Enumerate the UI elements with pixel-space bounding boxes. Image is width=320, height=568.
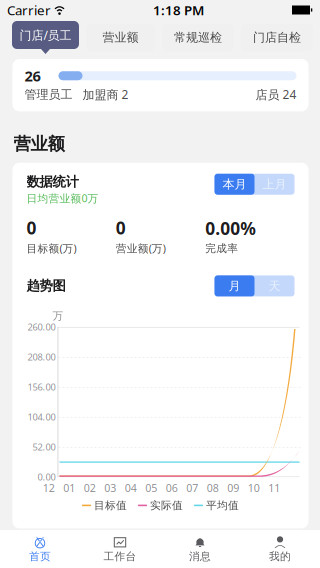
button[interactable]: 我的 [240,535,320,563]
button[interactable]: 营业额 [86,23,155,51]
staticText: 营业额 [102,30,138,45]
staticText: 常规巡检 [174,30,222,45]
button[interactable]: 门店自检 [241,23,313,51]
button[interactable]: 工作台 [80,535,160,563]
staticText: 208.00 [27,351,55,363]
staticText: 消息 [189,550,211,563]
staticText: 52.00 [32,441,55,453]
button[interactable]: 本月 [214,174,254,195]
staticText: 门店自检 [253,30,301,45]
staticText: 天 [268,279,280,293]
staticText: 本月 [222,177,246,191]
staticText: 目标额(万) [26,241,76,255]
staticText: 趋势图 [26,278,65,294]
button[interactable]: 上月 [254,174,294,195]
staticText: 12 [43,481,55,495]
staticText: 1:18 PM [153,1,204,19]
staticText: 万 [52,309,63,322]
staticText: 104.00 [27,411,55,423]
staticText: 平均值 [206,499,239,512]
staticText: 首页 [29,550,51,563]
staticText: 0.00 [37,471,55,483]
staticText: 06 [166,481,178,495]
staticText: 营业额 [13,133,64,155]
button[interactable]: 月 [214,275,254,296]
staticText: 10 [248,481,260,495]
staticText: 156.00 [27,381,55,393]
staticText: 0 [116,216,126,239]
staticText: 营业额(万) [116,241,166,255]
staticText: 0.00% [205,217,256,240]
staticText: 管理员工 [24,87,72,102]
staticText: 完成率 [205,242,238,255]
staticText: 03 [104,481,116,495]
button[interactable]: 门店/员工 [12,21,79,54]
staticText: Carrier [7,1,51,19]
staticText: 加盟商 2 [82,86,128,102]
staticText: 月 [228,279,240,293]
staticText: 04 [125,481,137,495]
staticText: 门店/员工 [19,27,71,43]
staticText: 日均营业额0万 [26,191,98,205]
staticText: 工作台 [103,550,136,563]
staticText: 11 [268,481,280,495]
staticText: 26 [24,66,40,85]
staticText: 目标值 [94,499,127,512]
staticText: 07 [186,481,198,495]
button[interactable]: 天 [254,275,294,296]
staticText: 我的 [269,550,291,563]
staticText: 实际值 [150,499,183,512]
button[interactable]: 首页 [0,535,80,563]
staticText: 数据统计 [26,174,78,190]
staticText: 260.00 [27,321,55,333]
staticText: 05 [145,481,157,495]
staticText: 店员 24 [255,86,296,102]
button[interactable]: 常规巡检 [162,23,234,51]
staticText: 01 [63,481,75,495]
staticText: 上月 [262,177,286,191]
staticText: 09 [227,481,239,495]
staticText: 02 [84,481,96,495]
staticText: 08 [207,481,219,495]
staticText: 0 [26,216,36,239]
button[interactable]: 消息 [160,535,240,563]
